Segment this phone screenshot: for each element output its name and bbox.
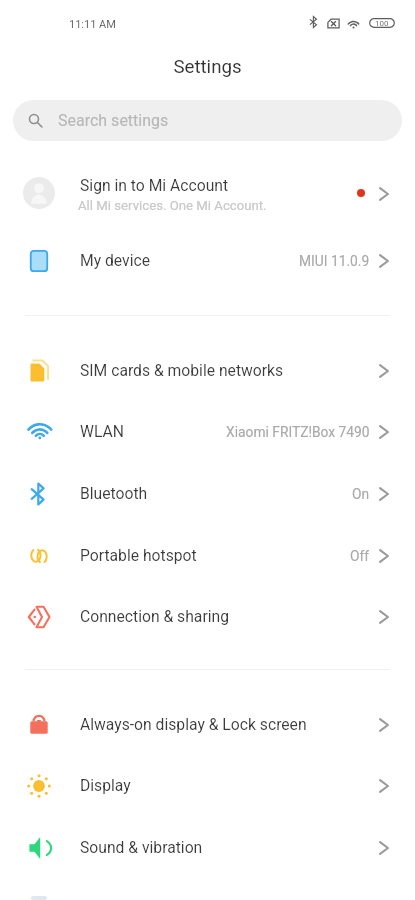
button[interactable]: Sign in to Mi Account (0, 159, 415, 227)
staticText: Portable hotspot (80, 546, 197, 564)
button[interactable]: Portable hotspot (0, 525, 415, 587)
button[interactable]: Sound & vibration (0, 817, 415, 879)
staticText: WLAN (80, 422, 124, 440)
staticText: Off (350, 548, 370, 564)
staticText: SIM cards & mobile networks (80, 361, 284, 379)
staticText: Always-on display & Lock screen (80, 715, 307, 733)
button[interactable]: Display (0, 755, 415, 817)
staticText: Sign in to Mi Account (80, 176, 229, 194)
staticText: Connection & sharing (80, 607, 229, 625)
staticText: On (352, 486, 370, 502)
staticText: 11:11 AM (69, 18, 116, 31)
staticText: Search settings (58, 111, 169, 130)
button[interactable]: My device (0, 230, 415, 292)
staticText: All Mi services. One Mi Account. (78, 198, 267, 213)
button[interactable]: Always-on display & Lock screen (0, 694, 415, 756)
staticText: My device (80, 251, 151, 269)
staticText: Sound & vibration (80, 838, 203, 856)
button[interactable]: WLAN (0, 401, 415, 463)
staticText: MIUI 11.0.9 (299, 253, 370, 269)
button[interactable]: Connection & sharing (0, 586, 415, 648)
button[interactable]: Bluetooth (0, 463, 415, 525)
staticText: Settings (173, 56, 242, 78)
staticText: Xiaomi FRITZ!Box 7490 (226, 424, 370, 440)
staticText: Bluetooth (80, 484, 148, 502)
staticText: Display (80, 776, 131, 794)
button[interactable]: SIM cards & mobile networks (0, 340, 415, 402)
staticText: 100 (375, 19, 389, 28)
button[interactable]: Search settings (13, 100, 402, 141)
